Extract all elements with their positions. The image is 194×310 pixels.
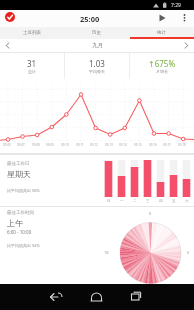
staticText: 09-18 xyxy=(178,143,186,147)
staticText: 比平均值高出 94% xyxy=(7,243,40,248)
staticText: 6:00 - 10:00 xyxy=(7,229,32,235)
staticText: 星期天 xyxy=(7,169,31,179)
staticText: 六 xyxy=(185,199,189,203)
staticText: 09-14 xyxy=(119,143,127,147)
staticText: 五 xyxy=(172,199,176,203)
staticText: 一 xyxy=(120,199,124,203)
staticText: 日 xyxy=(107,199,111,203)
staticText: 平均每天 xyxy=(89,69,105,74)
staticText: 土豆列表 xyxy=(23,30,41,36)
staticText: 09-17 xyxy=(163,143,171,147)
button[interactable] xyxy=(129,284,194,310)
staticText: 0 xyxy=(149,211,152,216)
button[interactable]: 历史 xyxy=(64,27,129,39)
staticText: 1.03 xyxy=(89,58,105,69)
staticText: 09-07 xyxy=(17,143,25,147)
button[interactable]: 九月 xyxy=(0,39,194,52)
staticText: 四 xyxy=(159,199,163,203)
staticText: ↑675% xyxy=(148,58,176,69)
staticText: 25:00 xyxy=(80,14,100,24)
button[interactable]: 统计 xyxy=(129,27,194,39)
staticText: 18 xyxy=(104,250,109,255)
staticText: 09-13 xyxy=(105,143,113,147)
staticText: 09-12 xyxy=(90,143,98,147)
staticText: 09-11 xyxy=(76,143,84,147)
button[interactable] xyxy=(0,284,64,310)
staticText: 7:29 xyxy=(171,2,181,9)
button[interactable]: 土豆列表 xyxy=(0,27,64,39)
staticText: 历史 xyxy=(92,30,101,36)
staticText: 6 xyxy=(187,250,190,255)
staticText: 12 xyxy=(146,278,151,283)
staticText: 09-15 xyxy=(134,143,142,147)
staticText: 三 xyxy=(146,199,150,203)
staticText: 总计 xyxy=(28,69,36,74)
staticText: 二 xyxy=(133,199,137,203)
staticText: 月增长 xyxy=(156,69,168,74)
staticText: 09-05 xyxy=(3,143,11,147)
staticText: 09-16 xyxy=(149,143,157,147)
button[interactable] xyxy=(155,12,169,26)
button[interactable] xyxy=(178,12,191,25)
staticText: 九月 xyxy=(92,42,103,49)
staticText: 最佳工作日 xyxy=(7,161,30,167)
staticText: 上午 xyxy=(7,218,23,228)
staticText: 09-08 xyxy=(32,143,40,147)
button[interactable] xyxy=(64,284,129,310)
staticText: 最佳工作时间 xyxy=(7,210,34,216)
staticText: 09-09 xyxy=(46,143,54,147)
staticText: 09-10 xyxy=(61,143,69,147)
staticText: 统计 xyxy=(157,30,166,36)
staticText: 31 xyxy=(27,58,37,69)
staticText: 比平均值高出 58% xyxy=(7,188,40,193)
